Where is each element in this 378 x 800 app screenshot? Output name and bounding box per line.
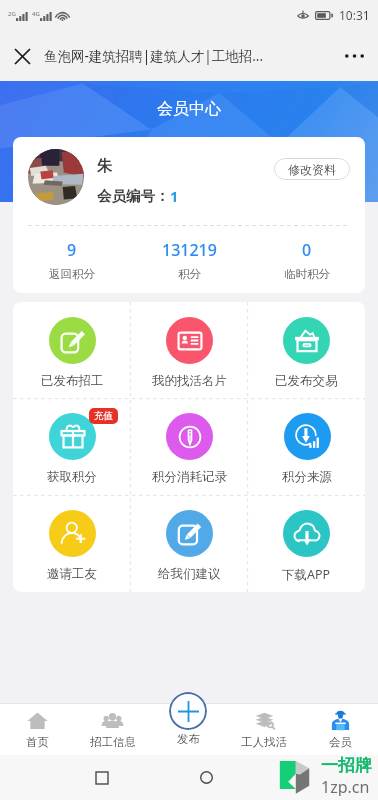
staticText: 9 [67, 239, 77, 261]
staticText: 已发布交易 [275, 373, 338, 389]
staticText: 已发布招工 [41, 373, 104, 389]
staticText: 会员中心 [157, 99, 221, 119]
staticText: 获取积分 [47, 469, 97, 485]
staticText: 一招牌 [321, 755, 372, 776]
staticText: 会员编号： [97, 187, 170, 205]
button[interactable]: 9 [13, 239, 131, 281]
staticText: 下载APP [282, 566, 331, 583]
button[interactable]: 给我们建议 [131, 495, 248, 592]
button[interactable]: 积分来源 [248, 398, 365, 495]
staticText: 0 [302, 239, 312, 261]
staticText: 朱 [97, 157, 112, 176]
staticText: 给我们建议 [158, 566, 221, 582]
button[interactable]: 下载APP [248, 495, 365, 592]
button[interactable]: 工人找活 [226, 703, 302, 755]
staticText: 修改资料 [288, 162, 336, 177]
button[interactable]: 发布 [150, 703, 226, 755]
staticText: 1 [170, 186, 179, 206]
button[interactable]: 会员 [302, 703, 378, 755]
staticText: 工人找活 [241, 735, 287, 749]
staticText: 我的找活名片 [152, 373, 227, 389]
staticText: 临时积分 [284, 267, 330, 281]
button[interactable]: 积分消耗记录 [131, 398, 248, 495]
staticText: 131219 [162, 239, 217, 261]
staticText: 积分消耗记录 [152, 469, 227, 485]
staticText: 积分 [178, 267, 201, 281]
staticText: 首页 [26, 735, 49, 749]
staticText: 充值 [94, 410, 113, 422]
staticText: 会员 [329, 735, 352, 749]
staticText: 发布 [177, 732, 200, 744]
button[interactable]: 131219 [131, 239, 248, 281]
staticText: 1zp.cn [321, 776, 370, 796]
staticText: 2G [8, 10, 16, 18]
button[interactable]: 0 [248, 239, 365, 281]
staticText: 10:31 [339, 7, 370, 23]
staticText: 邀请工友 [47, 566, 97, 582]
button[interactable]: 修改资料 [274, 158, 350, 180]
button[interactable]: 已发布交易 [248, 302, 365, 398]
button[interactable]: More options [330, 32, 378, 80]
button[interactable]: 首页 [0, 703, 75, 755]
staticText: 返回积分 [49, 267, 95, 281]
staticText: 鱼泡网-建筑招聘|建筑人才|工地招... [44, 47, 330, 65]
button[interactable]: 充值 [13, 398, 131, 495]
button[interactable]: 我的找活名片 [131, 302, 248, 398]
button[interactable]: 已发布招工 [13, 302, 131, 398]
button[interactable]: Close [0, 34, 44, 78]
button[interactable]: Recent apps [50, 755, 154, 800]
button[interactable]: 招工信息 [75, 703, 150, 755]
staticText: 招工信息 [90, 735, 136, 749]
button[interactable]: Home [154, 755, 258, 800]
staticText: 积分来源 [282, 469, 332, 485]
staticText: 4G [32, 10, 40, 18]
button[interactable]: 邀请工友 [13, 495, 131, 592]
